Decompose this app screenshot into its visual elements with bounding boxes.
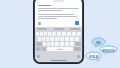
button[interactable]: [67, 32, 71, 36]
button[interactable]: [70, 42, 74, 46]
button[interactable]: [77, 32, 81, 36]
button[interactable]: [52, 32, 56, 36]
button[interactable]: [65, 42, 69, 46]
button[interactable]: [46, 37, 49, 41]
staticText: HOLA!: [89, 55, 99, 59]
button[interactable]: HOLA!: [86, 52, 101, 61]
button[interactable]: Dictate: [77, 55, 80, 58]
button[interactable]: [65, 37, 69, 41]
button[interactable]: [42, 47, 46, 51]
button[interactable]: [42, 37, 45, 41]
button[interactable]: [75, 37, 79, 41]
button[interactable]: [72, 32, 76, 36]
button[interactable]: [36, 42, 42, 46]
button[interactable]: [57, 32, 61, 36]
button[interactable]: [36, 47, 41, 51]
button[interactable]: [36, 32, 39, 36]
staticText: BONJOUR: [102, 49, 115, 53]
button[interactable]: [38, 37, 41, 41]
button[interactable]: [47, 42, 50, 46]
button[interactable]: [44, 32, 47, 36]
button[interactable]: [70, 37, 74, 41]
button[interactable]: [48, 32, 51, 36]
button[interactable]: HI: [92, 38, 105, 47]
button[interactable]: BONJOUR: [100, 46, 117, 54]
button[interactable]: [60, 42, 64, 46]
button[interactable]: [51, 42, 54, 46]
button[interactable]: [60, 37, 64, 41]
button[interactable]: [74, 47, 81, 51]
staticText: HI: [96, 40, 101, 45]
button[interactable]: [50, 37, 54, 41]
button[interactable]: Attach: [38, 22, 41, 25]
button[interactable]: [62, 32, 66, 36]
button[interactable]: [43, 42, 46, 46]
button[interactable]: [55, 37, 59, 41]
button[interactable]: [75, 42, 81, 46]
button[interactable]: [40, 32, 43, 36]
button[interactable]: [55, 42, 59, 46]
button[interactable]: [47, 47, 73, 51]
button[interactable]: Emoji: [37, 55, 40, 58]
button[interactable]: Send: [75, 21, 79, 25]
